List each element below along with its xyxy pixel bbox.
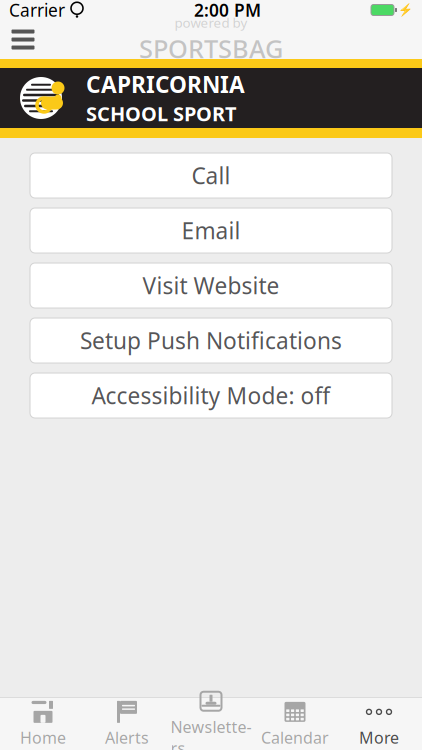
staticText: 2:00 PM — [194, 0, 261, 21]
staticText: Visit Website — [142, 270, 279, 300]
staticText: powered by — [174, 14, 247, 31]
button[interactable]: Email — [30, 208, 392, 253]
button[interactable]: Calendar — [253, 698, 337, 750]
staticText: Accessibility Mode: off — [91, 380, 330, 410]
staticText: Carrier — [9, 0, 65, 21]
staticText: Email — [181, 215, 240, 245]
button[interactable]: Accessibility Mode: off — [30, 373, 392, 418]
button[interactable]: Newsletters — [169, 698, 253, 750]
button[interactable]: Setup Push Notifications — [30, 318, 392, 363]
button[interactable]: Visit Website — [30, 263, 392, 308]
button[interactable]: Menu — [0, 20, 46, 59]
staticText: SPORTSBAG — [139, 31, 283, 65]
staticText: Calendar — [261, 727, 329, 748]
button[interactable]: More — [337, 698, 421, 750]
staticText: SCHOOL SPORT — [86, 100, 237, 127]
staticText: Setup Push Notifications — [80, 325, 342, 355]
staticText: ⚡ — [398, 3, 413, 17]
staticText: Call — [191, 160, 230, 190]
staticText: Newsletters — [170, 716, 251, 750]
button[interactable]: Call — [30, 153, 392, 198]
button[interactable]: Home — [1, 698, 85, 750]
button[interactable]: Alerts — [85, 698, 169, 750]
staticText: More — [359, 727, 399, 748]
staticText: Alerts — [105, 727, 149, 748]
staticText: Home — [20, 727, 66, 748]
staticText: CAPRICORNIA — [86, 69, 245, 99]
